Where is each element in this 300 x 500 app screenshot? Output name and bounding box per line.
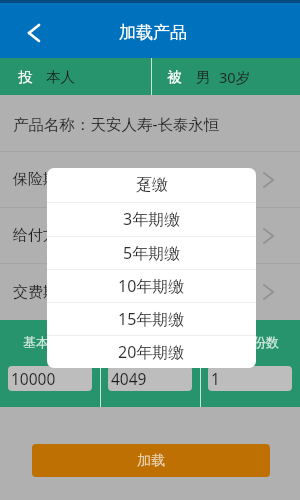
button[interactable]: 保险期间	[0, 152, 300, 207]
staticText: 份数	[253, 334, 279, 350]
staticText: 15年期缴	[118, 308, 185, 330]
staticText: 给付方式	[13, 226, 73, 245]
button[interactable]: 4049	[108, 366, 192, 391]
staticText: 被	[167, 68, 182, 86]
staticText: 20年期缴	[118, 341, 185, 363]
staticText: 产品名称：天安人寿-长泰永恒	[13, 113, 220, 134]
staticText: 30岁	[219, 67, 251, 87]
staticText: 男	[196, 68, 211, 86]
button[interactable]: 20年期缴	[47, 335, 256, 368]
button[interactable]: 10000	[8, 366, 92, 391]
staticText: 本人	[46, 68, 75, 86]
staticText: 10年期缴	[118, 275, 185, 297]
staticText: 基本保额	[23, 334, 75, 350]
staticText: 4049	[111, 368, 147, 389]
button[interactable]: 10年期缴	[47, 269, 256, 302]
button[interactable]: 投	[0, 58, 150, 95]
staticText: 年交保费	[124, 334, 176, 350]
button[interactable]: 15年期缴	[47, 302, 256, 335]
button[interactable]: 趸缴	[47, 168, 256, 202]
button[interactable]: 1	[208, 366, 292, 391]
staticText: 1	[211, 368, 220, 389]
staticText: 加载	[137, 452, 165, 470]
staticText: 交费期间	[13, 283, 73, 302]
staticText: 投	[18, 68, 33, 86]
staticText: 10000	[11, 368, 56, 389]
button[interactable]: 给付方式	[0, 208, 300, 263]
staticText: 趸缴	[136, 175, 168, 195]
staticText: 加载产品	[119, 22, 187, 43]
button[interactable]: 被	[150, 58, 300, 95]
button[interactable]: 5年期缴	[47, 236, 256, 269]
button[interactable]: Back	[10, 9, 58, 57]
button[interactable]: 加载	[32, 444, 270, 477]
staticText: 5年期缴	[123, 242, 181, 264]
button[interactable]: 交费期间	[0, 264, 300, 320]
staticText: 保险期间	[13, 170, 73, 189]
staticText: 3年期缴	[123, 208, 181, 230]
button[interactable]: 3年期缴	[47, 202, 256, 236]
